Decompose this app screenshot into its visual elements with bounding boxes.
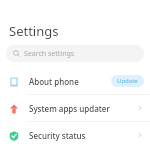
- button[interactable]: Update: [111, 75, 144, 87]
- other: Security status: [9, 131, 19, 141]
- staticText: Security status: [29, 130, 136, 141]
- other: System apps updater: [9, 104, 19, 114]
- staticText: Update: [117, 77, 138, 85]
- other: About phone: [9, 77, 19, 87]
- staticText: About phone: [29, 76, 111, 87]
- staticText: Search settings: [24, 49, 75, 59]
- button[interactable]: About phone: [0, 68, 150, 94]
- other: Open: [136, 131, 144, 139]
- button[interactable]: Search settings: [6, 45, 144, 62]
- button[interactable]: System apps updater: [0, 95, 150, 121]
- staticText: Settings: [9, 22, 59, 40]
- button[interactable]: Security status: [0, 122, 150, 148]
- other: Open: [136, 104, 144, 112]
- staticText: System apps updater: [29, 103, 136, 114]
